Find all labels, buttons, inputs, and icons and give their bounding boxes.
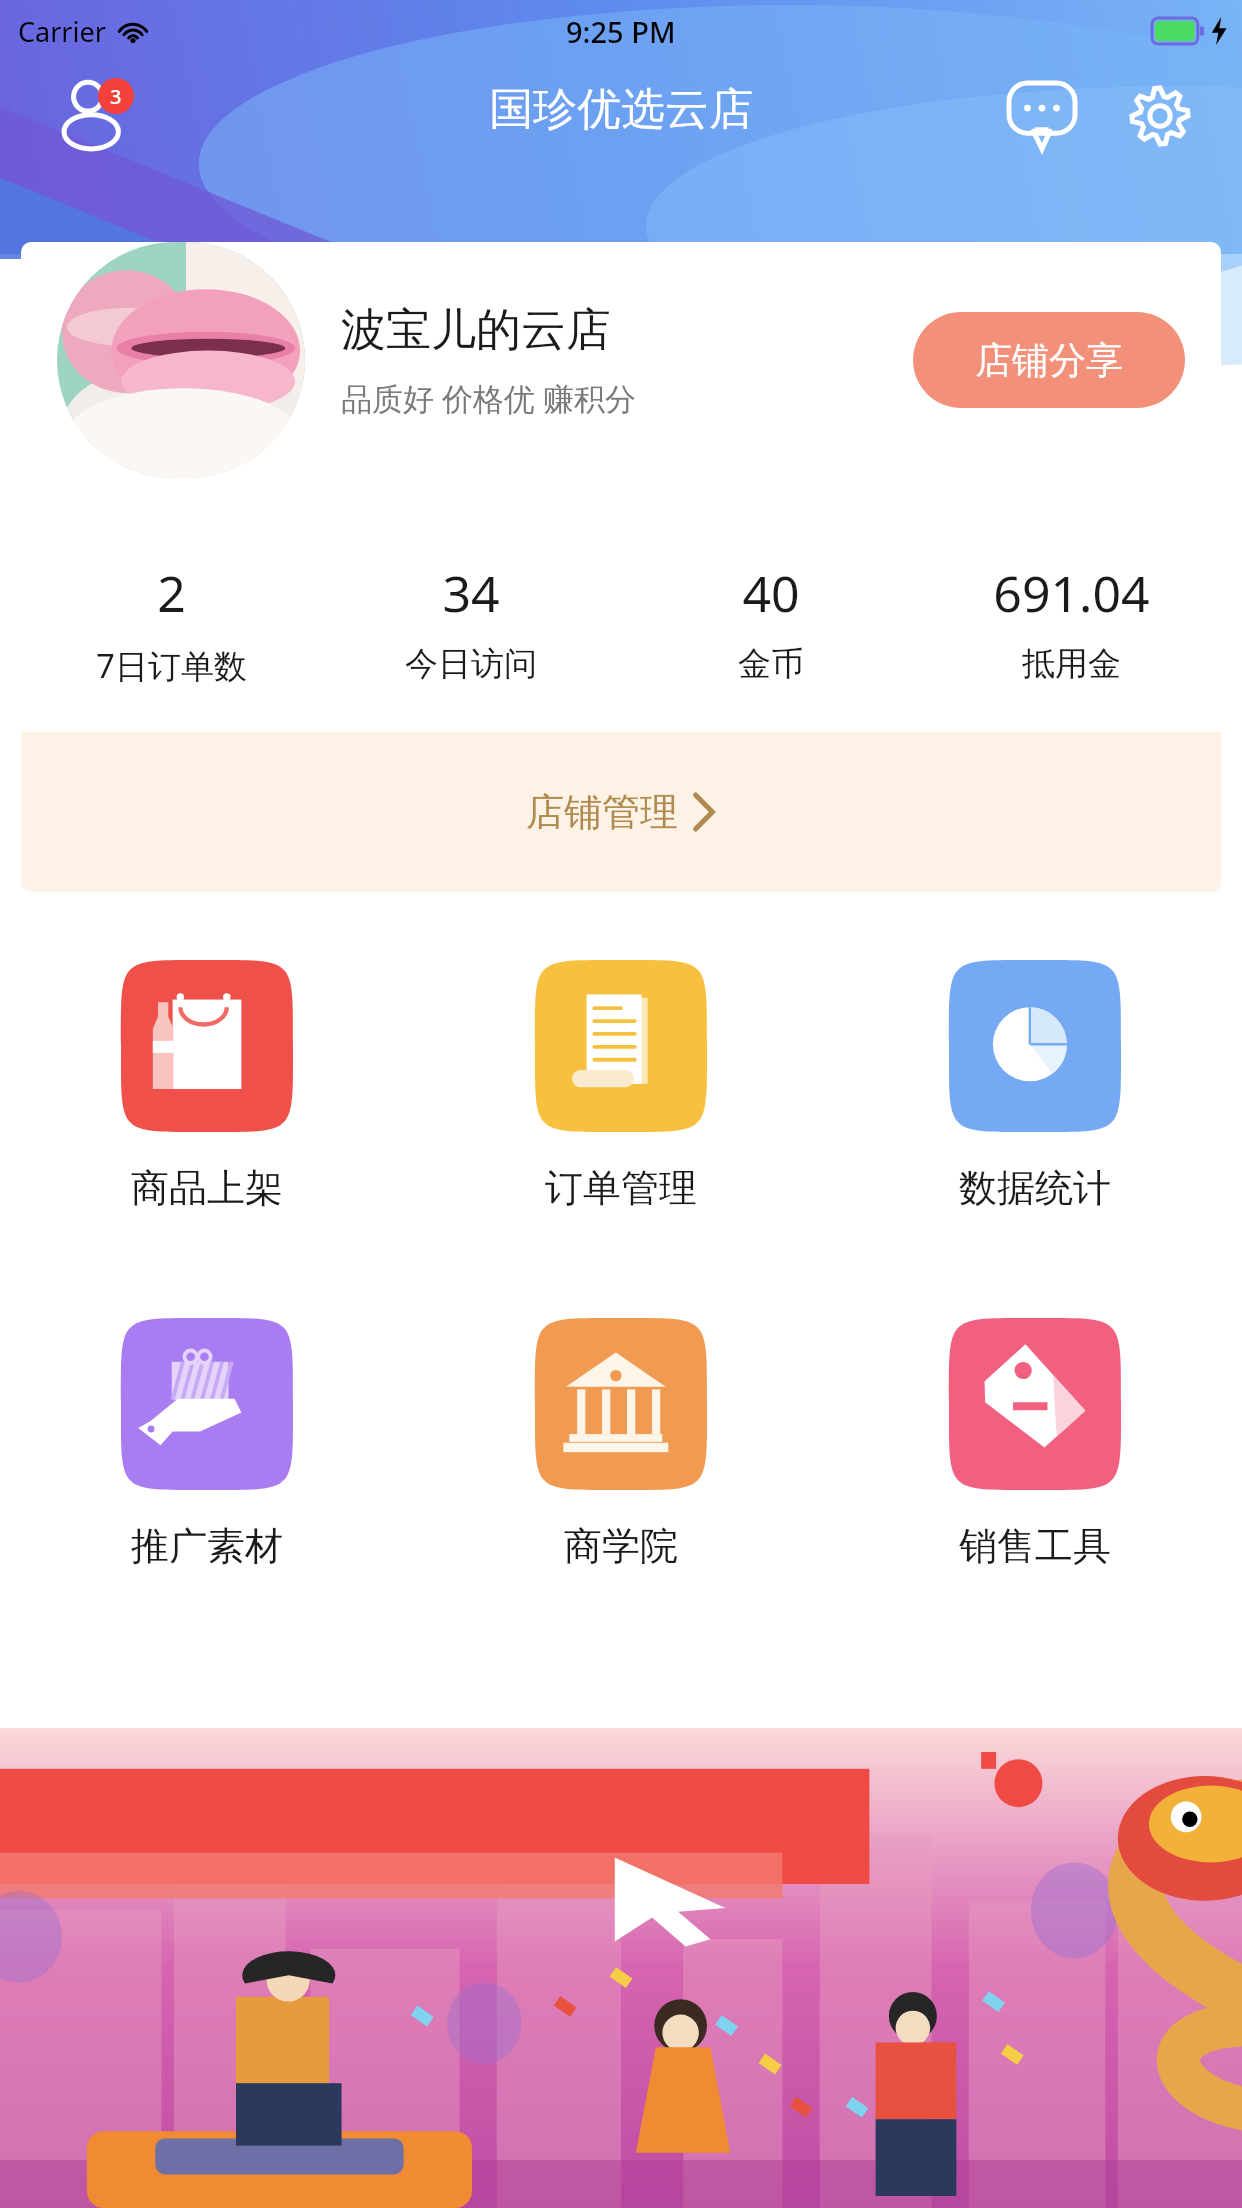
staticText: 7日订单数 [96, 643, 247, 688]
staticText: 金币 [738, 643, 804, 685]
button[interactable]: 商学院 [414, 1318, 828, 1570]
staticText: 订单管理 [545, 1164, 697, 1212]
staticText: 商品上架 [131, 1164, 283, 1212]
staticText: 3 [110, 83, 122, 110]
staticText: 销售工具 [959, 1522, 1111, 1570]
button[interactable]: Settings [1118, 74, 1202, 158]
button[interactable]: 数据统计 [828, 960, 1242, 1212]
button[interactable]: Invite friends to open a store [0, 1728, 1242, 2208]
staticText: 抵用金 [1022, 643, 1121, 685]
button[interactable]: 销售工具 [828, 1318, 1242, 1570]
button[interactable]: 2 [21, 559, 321, 688]
button[interactable]: 34 [321, 559, 621, 685]
button[interactable]: Members [56, 78, 136, 156]
staticText: 今日访问 [405, 643, 537, 685]
button[interactable]: Messages [1000, 74, 1084, 158]
staticText: 店铺管理 [526, 788, 678, 836]
staticText: 2 [157, 559, 186, 627]
staticText: 40 [742, 559, 800, 627]
button[interactable]: 商品上架 [0, 960, 414, 1212]
button[interactable]: 店铺管理 [21, 732, 1221, 892]
staticText: 国珍优选云店 [489, 82, 753, 137]
staticText: 691.04 [993, 559, 1150, 627]
staticText: 店铺分享 [975, 337, 1123, 384]
button[interactable]: 订单管理 [414, 960, 828, 1212]
staticText: 商学院 [564, 1522, 678, 1570]
staticText: 34 [442, 559, 500, 627]
staticText: 推广素材 [131, 1522, 283, 1570]
button[interactable]: 店铺分享 [913, 312, 1185, 408]
button[interactable]: 40 [621, 559, 921, 685]
staticText: 9:25 PM [566, 12, 676, 51]
staticText: 数据统计 [959, 1164, 1111, 1212]
button[interactable]: 691.04 [921, 559, 1221, 685]
staticText: Carrier [18, 13, 106, 50]
staticText: 品质好 价格优 赚积分 [341, 377, 637, 419]
button[interactable]: 推广素材 [0, 1318, 414, 1570]
staticText: 波宝儿的云店 [341, 302, 611, 359]
